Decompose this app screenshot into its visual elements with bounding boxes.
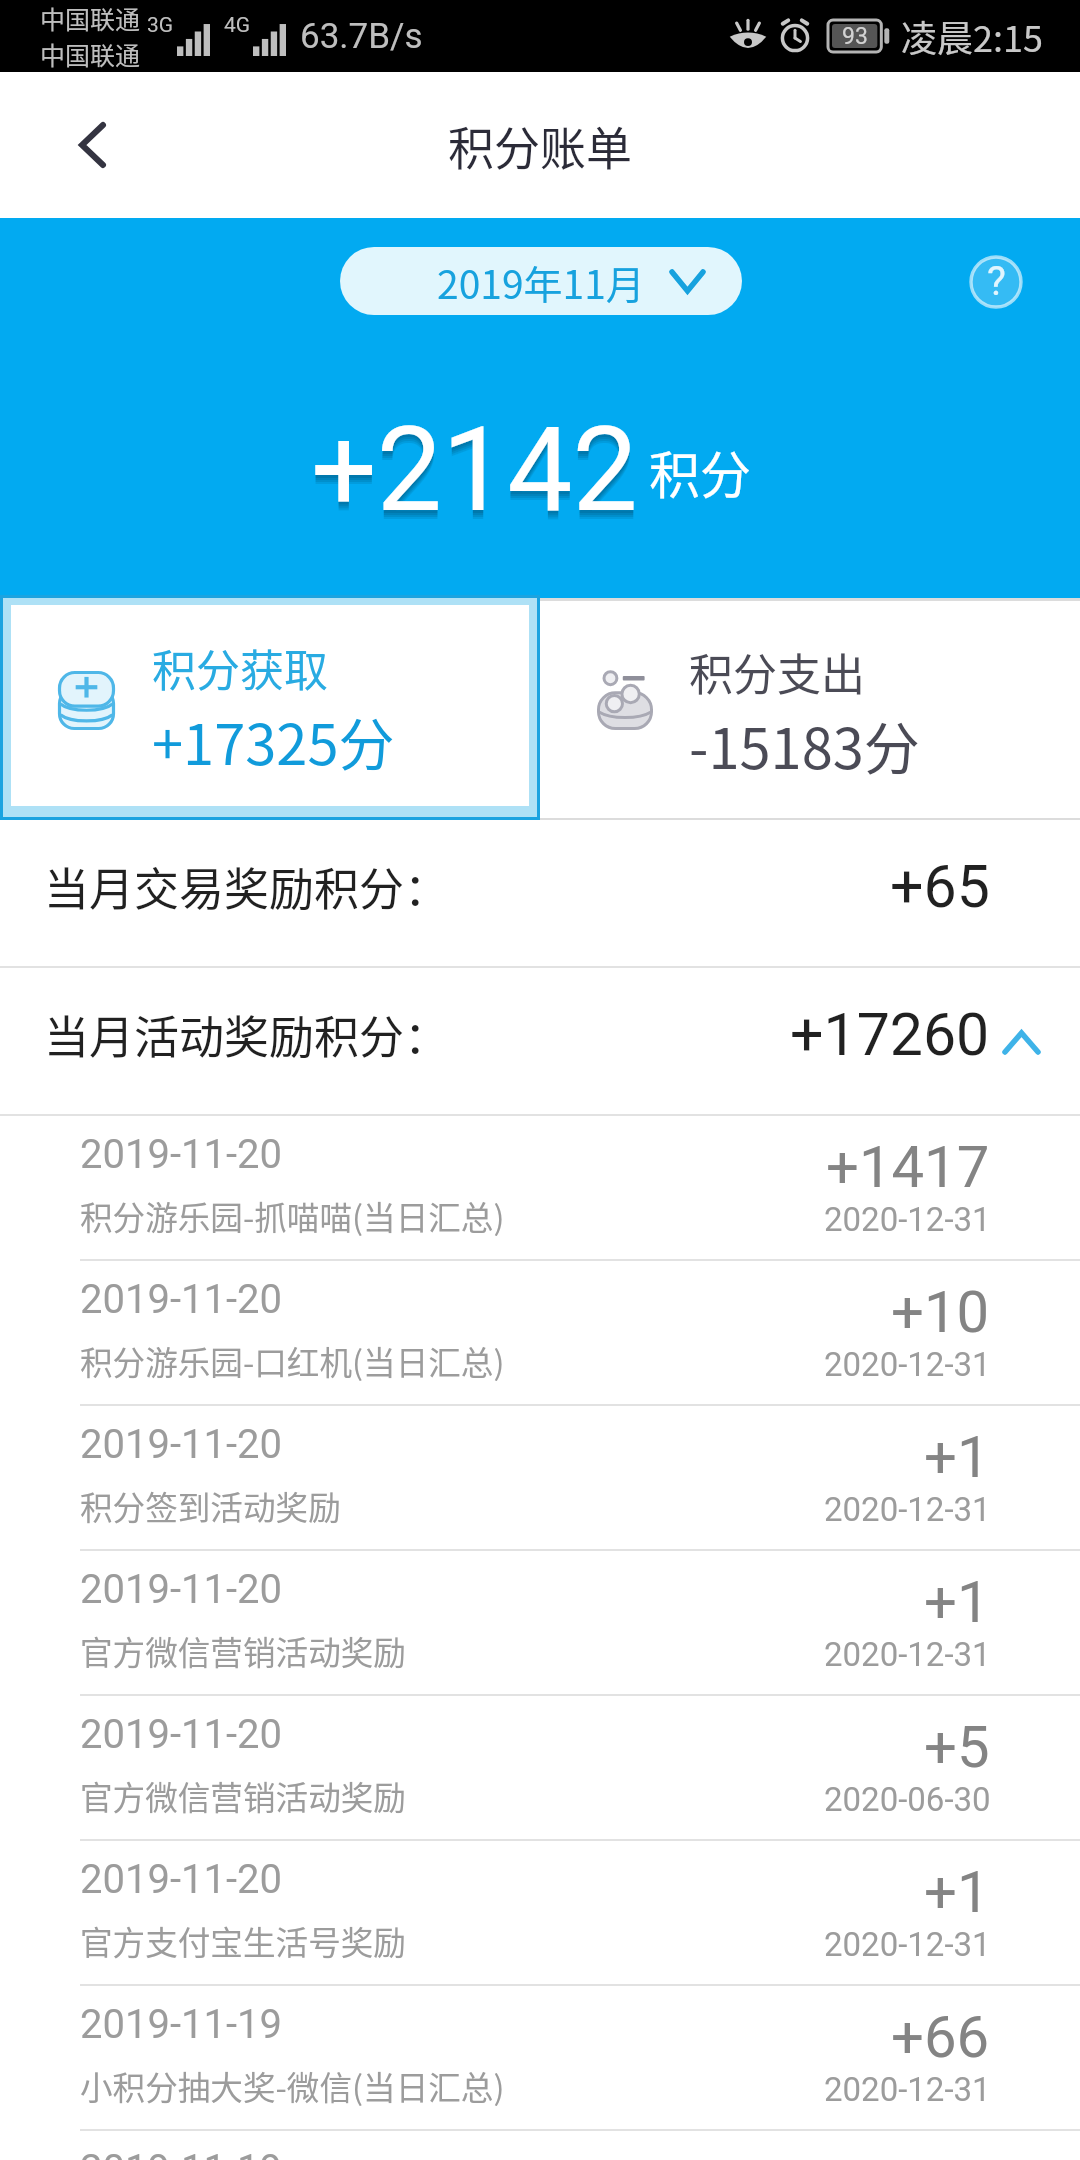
staticText: 2019-11-20 [80,1276,282,1323]
button[interactable]: 2019-11-20 [0,1551,1080,1694]
staticText: 积分 [649,435,752,509]
button[interactable]: 2019-11-20 [0,1696,1080,1839]
button[interactable]: 2019-11-20 [0,1261,1080,1404]
staticText: 3G [147,13,174,38]
staticText: 2020-12-31 [824,2070,991,2109]
staticText: 2019-11-20 [80,1711,282,1758]
staticText: 积分签到活动奖励 [80,1482,341,1529]
staticText: +5 [924,1713,990,1781]
staticText: 93 [842,23,868,50]
button[interactable]: 2019年11月 [340,247,742,315]
button[interactable]: 当月活动奖励积分： [0,968,1080,1114]
staticText: +65 [890,852,990,921]
staticText: 2019-11-19 [80,2146,282,2160]
staticText: 63.7B/s [300,16,423,57]
staticText: +2142 [311,405,638,541]
staticText: 2020-12-31 [824,1345,991,1384]
button[interactable]: Help [958,244,1034,320]
staticText: 积分支出 [689,640,865,704]
button[interactable]: 2019-11-20 [0,1116,1080,1259]
staticText: 小积分抽大奖-微信(当日汇总) [80,2062,505,2109]
staticText: ? [987,258,1006,305]
button[interactable]: 2019-11-19 [0,2131,1080,2160]
staticText: +2142 [311,402,638,538]
staticText: 官方微信营销活动奖励 [80,1627,406,1674]
staticText: 中国联通 [40,36,141,72]
staticText: +10 [891,1278,990,1346]
staticText: 2020-12-31 [824,1925,991,1964]
staticText: 2020-12-31 [824,1200,991,1239]
button[interactable]: 当月交易奖励积分： [0,820,1080,966]
staticText: +1 [924,1423,990,1491]
staticText: 2020-06-30 [824,1780,991,1819]
staticText: 2020-12-31 [824,1490,991,1529]
staticText: 当月活动奖励积分： [44,1002,450,1067]
staticText: 积分账单 [448,112,632,179]
staticText: 2019-11-20 [80,1421,282,1468]
staticText: 2019-11-20 [80,1566,282,1613]
staticText: -15183分 [689,704,920,785]
staticText: 中国联通 [40,0,141,36]
staticText: 2020-12-31 [824,1635,991,1674]
staticText: 凌晨2:15 [901,10,1043,62]
staticText: +17325分 [152,700,395,781]
button[interactable]: 积分支出 [540,601,1080,818]
staticText: 积分获取 [152,636,328,700]
button[interactable]: 2019-11-20 [0,1841,1080,1984]
button[interactable]: 积分获取 [11,605,529,806]
staticText: 官方支付宝生活号奖励 [80,1917,406,1964]
staticText: +2142 [311,411,638,547]
staticText: 2019-11-20 [80,1131,282,1178]
staticText: 当月交易奖励积分： [44,854,450,919]
staticText: +2142 [311,409,638,545]
button[interactable]: Back [46,99,138,191]
staticText: +17260 [790,1000,990,1069]
button[interactable]: 2019-11-19 [0,1986,1080,2129]
staticText: +1 [924,1568,990,1636]
staticText: 2019年11月 [437,254,645,310]
staticText: 2019-11-19 [80,2001,282,2048]
button[interactable]: 2019-11-20 [0,1406,1080,1549]
staticText: 积分游乐园-抓喵喵(当日汇总) [80,1192,505,1239]
staticText: 官方微信营销活动奖励 [80,1772,406,1819]
staticText: 积分游乐园-口红机(当日汇总) [80,1337,505,1384]
staticText: 2019-11-20 [80,1856,282,1903]
staticText: +66 [891,2003,990,2071]
staticText: +1 [924,1858,990,1926]
staticText: +1417 [826,1133,990,1201]
staticText: +2142 [311,407,638,543]
staticText: 4G [224,13,251,38]
